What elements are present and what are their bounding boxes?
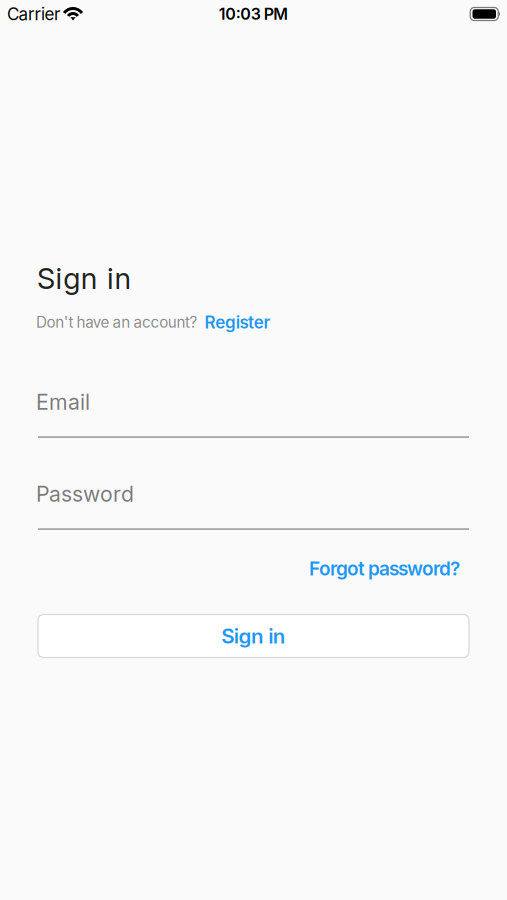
button[interactable]: Register: [205, 312, 270, 333]
staticText: Register: [205, 312, 270, 333]
staticText: Password: [36, 481, 134, 507]
button[interactable]: Password: [38, 481, 469, 530]
staticText: Don't have an account?: [36, 313, 198, 331]
staticText: Sign in: [37, 261, 132, 296]
button[interactable]: Sign in: [38, 614, 469, 657]
staticText: Carrier: [7, 4, 60, 24]
staticText: Forgot password?: [309, 557, 460, 580]
button[interactable]: Email: [38, 389, 469, 438]
staticText: Email: [36, 389, 90, 415]
button[interactable]: Forgot password?: [309, 557, 460, 580]
staticText: 10:03 PM: [219, 4, 288, 24]
staticText: Sign in: [221, 623, 286, 648]
